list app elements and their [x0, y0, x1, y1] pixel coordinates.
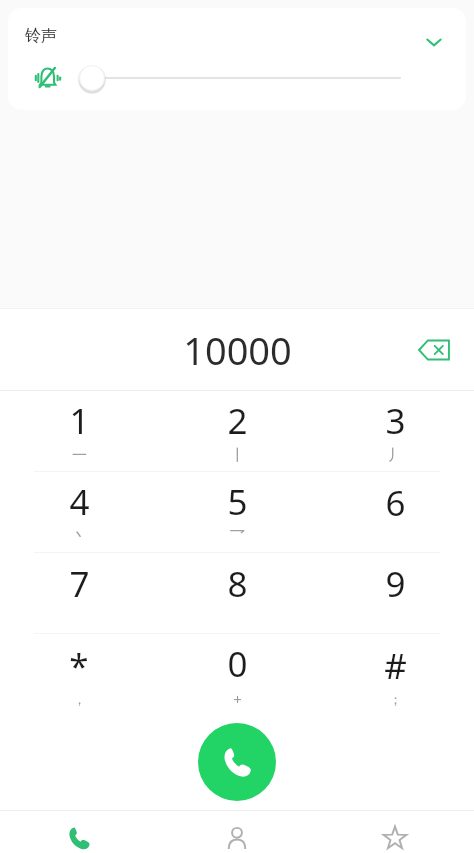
button[interactable]: 0 — [158, 634, 316, 714]
button[interactable]: 5 — [158, 472, 316, 552]
button[interactable]: Favorites — [316, 811, 474, 853]
button[interactable]: Backspace — [408, 324, 460, 376]
button[interactable]: 4 — [0, 472, 158, 552]
staticText: * — [69, 642, 89, 690]
button[interactable]: 8 — [158, 553, 316, 633]
staticText: 6 — [385, 479, 406, 527]
staticText: 丶 — [72, 527, 87, 546]
button[interactable]: 1 — [0, 391, 158, 471]
button[interactable]: Mute ringtone — [31, 62, 63, 94]
staticText: 2 — [227, 397, 248, 445]
button[interactable] — [74, 54, 466, 102]
staticText: 9 — [385, 560, 406, 608]
staticText: ； — [389, 691, 402, 707]
staticText: 丿 — [388, 446, 403, 465]
button[interactable]: 3 — [316, 391, 474, 471]
staticText: 4 — [69, 478, 90, 526]
button[interactable]: 6 — [316, 472, 474, 552]
button[interactable]: # — [316, 634, 474, 714]
staticText: ， — [73, 691, 86, 707]
staticText: 乛 — [230, 527, 245, 546]
staticText: 10000 — [183, 324, 292, 376]
button[interactable]: 2 — [158, 391, 316, 471]
staticText: # — [384, 642, 407, 690]
button[interactable]: Contacts — [158, 811, 316, 853]
staticText: 5 — [227, 478, 248, 526]
staticText: 铃声 — [25, 26, 57, 46]
staticText: 1 — [69, 397, 90, 445]
button[interactable]: Dialer — [0, 811, 158, 853]
staticText: 3 — [385, 397, 406, 445]
staticText: 7 — [69, 560, 90, 608]
staticText: 丨 — [230, 446, 245, 465]
staticText: 0 — [227, 640, 248, 688]
staticText: 一 — [72, 446, 87, 465]
button[interactable]: 7 — [0, 553, 158, 633]
staticText: 8 — [227, 560, 248, 608]
button[interactable]: Collapse — [412, 20, 456, 64]
button[interactable]: * — [0, 634, 158, 714]
button[interactable]: 9 — [316, 553, 474, 633]
staticText: + — [233, 689, 242, 709]
button[interactable]: Call — [198, 723, 276, 801]
